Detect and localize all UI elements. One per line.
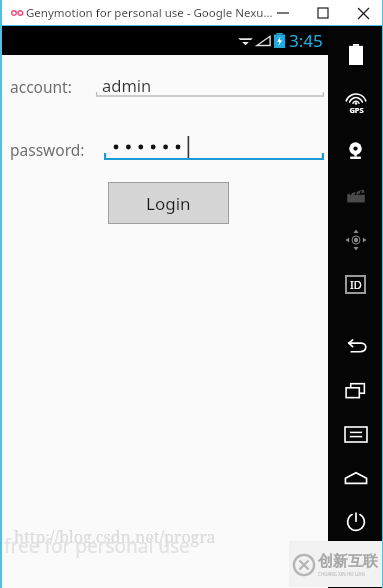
- button[interactable]: [104, 132, 324, 162]
- staticText: ID: [350, 277, 362, 292]
- button[interactable]: admin: [96, 69, 324, 99]
- button[interactable]: Maximize: [303, 0, 343, 26]
- staticText: 创新互联: [318, 552, 378, 571]
- staticText: Login: [146, 192, 191, 215]
- staticText: Genymotion for personal use - Google Nex…: [26, 5, 273, 21]
- staticText: CHUANG XIN HU LIAN: [318, 571, 365, 577]
- staticText: GPS: [349, 105, 364, 115]
- button[interactable]: Power: [328, 504, 383, 540]
- staticText: 3:45: [289, 29, 323, 52]
- staticText: admin: [102, 74, 152, 96]
- button[interactable]: Login: [108, 182, 229, 224]
- staticText: http://blog.csdn.net/progra: [14, 526, 216, 548]
- button[interactable]: GPS: [328, 86, 383, 122]
- staticText: password:: [10, 139, 85, 160]
- staticText: account:: [10, 76, 72, 97]
- button[interactable]: Rotate: [328, 222, 383, 258]
- staticText: free for personal use: [4, 533, 190, 559]
- button[interactable]: Camera: [328, 132, 383, 168]
- button[interactable]: Close: [343, 0, 383, 26]
- button[interactable]: Screen record: [328, 178, 383, 214]
- button[interactable]: Identifiers: [328, 266, 383, 302]
- button[interactable]: Recents: [328, 372, 383, 408]
- button[interactable]: Minimize: [263, 0, 303, 26]
- button[interactable]: Menu: [328, 416, 383, 452]
- button[interactable]: Back: [328, 328, 383, 364]
- button[interactable]: Home: [328, 460, 383, 496]
- button[interactable]: Battery: [328, 36, 383, 72]
